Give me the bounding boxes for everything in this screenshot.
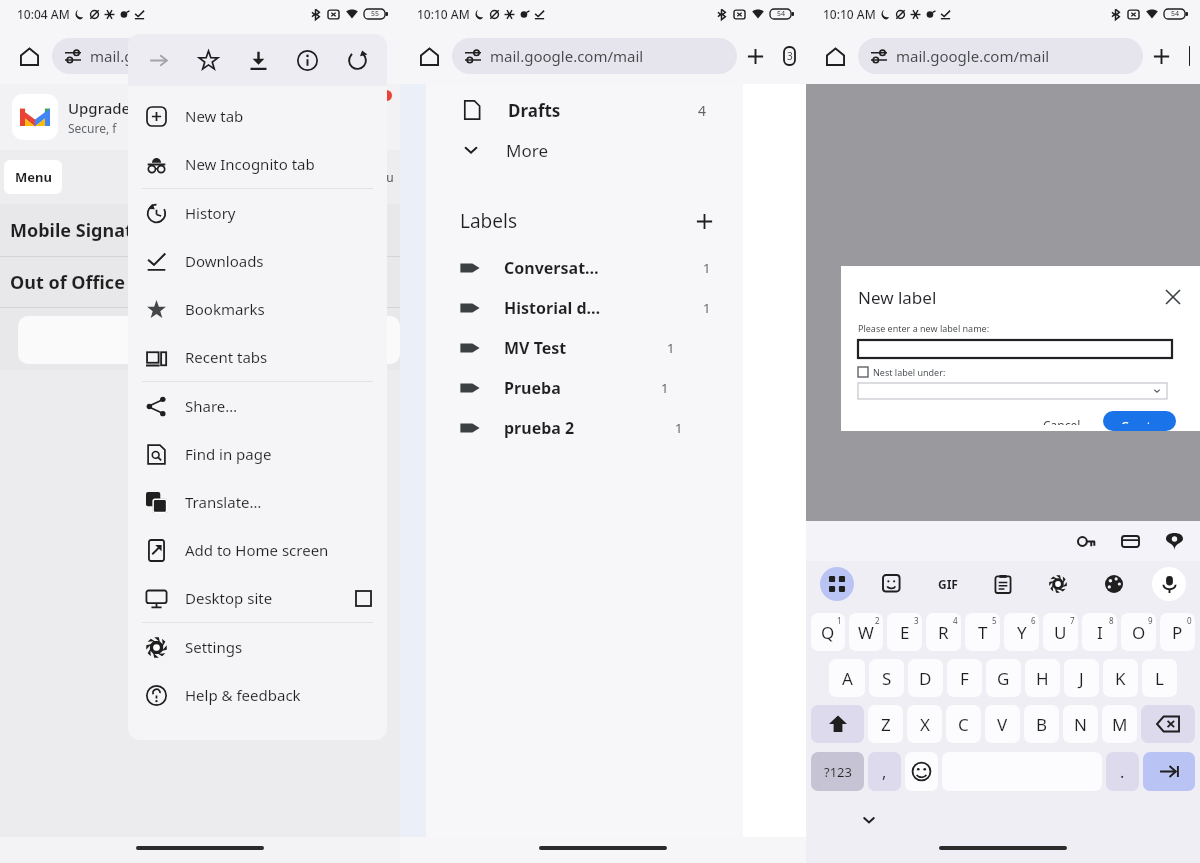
button[interactable]: C xyxy=(946,705,981,743)
button[interactable]: mail.go xyxy=(52,38,302,74)
button[interactable] xyxy=(858,367,868,377)
button[interactable]: , xyxy=(868,752,901,791)
staticText: V xyxy=(997,713,1008,736)
button[interactable]: P xyxy=(1160,613,1195,651)
button[interactable]: T xyxy=(965,613,1000,651)
button[interactable]: Bookmark xyxy=(188,40,228,80)
staticText: A xyxy=(842,667,853,690)
button[interactable]: M xyxy=(1102,705,1137,743)
button[interactable]: N xyxy=(1063,705,1098,743)
button[interactable]: F xyxy=(947,659,982,697)
button[interactable]: New tab xyxy=(1143,38,1179,74)
button[interactable]: New tab xyxy=(128,92,387,140)
button[interactable]: . xyxy=(1106,752,1139,791)
button[interactable] xyxy=(858,340,1172,358)
button[interactable]: Prueba xyxy=(400,368,743,408)
button[interactable]: Downloads xyxy=(128,237,387,285)
button[interactable]: New Incognito tab xyxy=(128,140,387,188)
button[interactable]: Tabs xyxy=(1189,38,1190,74)
button[interactable]: A xyxy=(829,659,865,697)
button[interactable]: Shift xyxy=(811,705,864,743)
button[interactable]: Help & feedback xyxy=(128,671,387,719)
button[interactable]: R xyxy=(926,613,961,651)
button[interactable]: Create new label xyxy=(687,204,721,238)
button[interactable]: L xyxy=(1142,659,1177,697)
button[interactable]: Addresses xyxy=(1158,525,1190,557)
button[interactable]: Payment methods xyxy=(1114,525,1146,557)
button[interactable]: Historial de convers… xyxy=(400,288,743,328)
button[interactable]: O xyxy=(1121,613,1156,651)
button[interactable]: Settings xyxy=(1041,567,1075,601)
button[interactable]: Download xyxy=(238,40,278,80)
button[interactable]: Toolbar xyxy=(820,567,854,601)
button[interactable]: Q xyxy=(811,613,845,651)
button[interactable]: GIF xyxy=(931,567,965,601)
button[interactable]: Bookmarks xyxy=(128,285,387,333)
button[interactable]: Desktop site xyxy=(128,574,387,622)
staticText: mail.google.com/mail xyxy=(896,46,1050,66)
staticText: Drafts xyxy=(508,99,561,122)
button[interactable]: mail.google.com/mail xyxy=(858,38,1143,74)
button[interactable]: Home xyxy=(412,39,446,73)
button[interactable]: V xyxy=(985,705,1020,743)
button[interactable]: Clipboard xyxy=(986,567,1020,601)
button[interactable]: H xyxy=(1025,659,1060,697)
button[interactable]: X xyxy=(907,705,942,743)
staticText: 2 xyxy=(875,615,880,626)
staticText: New Incognito tab xyxy=(185,154,315,174)
button[interactable]: Create xyxy=(1103,411,1176,431)
staticText: Q xyxy=(821,621,835,644)
button[interactable]: New tab xyxy=(737,38,773,74)
button[interactable]: D xyxy=(908,659,943,697)
staticText: T xyxy=(978,621,988,644)
button[interactable]: Z xyxy=(868,705,903,743)
button[interactable]: Home xyxy=(818,39,852,73)
button[interactable]: Forward xyxy=(138,40,178,80)
button[interactable]: Translate… xyxy=(128,478,387,526)
button[interactable]: mail.google.com/mail xyxy=(452,38,737,74)
button[interactable]: Backspace xyxy=(1141,705,1195,743)
button[interactable]: Cancel xyxy=(1031,411,1093,431)
button[interactable]: Recent tabs xyxy=(128,333,387,381)
button[interactable]: Tabs xyxy=(783,38,796,74)
button[interactable]: Reload xyxy=(337,40,377,80)
button[interactable]: K xyxy=(1103,659,1138,697)
button[interactable]: Settings xyxy=(128,623,387,671)
button[interactable]: Emoji xyxy=(905,752,938,791)
button[interactable]: E xyxy=(887,613,922,651)
button[interactable]: S xyxy=(869,659,904,697)
button[interactable]: Y xyxy=(1004,613,1039,651)
button[interactable] xyxy=(858,383,1167,399)
button[interactable]: W xyxy=(849,613,883,651)
button[interactable]: More xyxy=(400,130,743,170)
button[interactable]: Passwords xyxy=(1070,525,1102,557)
button[interactable]: Themes xyxy=(1097,567,1131,601)
button[interactable]: Drafts xyxy=(400,90,743,130)
button[interactable]: Close xyxy=(1158,282,1188,312)
button[interactable]: ?123 xyxy=(811,752,864,791)
button[interactable]: Enter xyxy=(1143,752,1195,791)
button[interactable]: Page info xyxy=(287,40,327,80)
button[interactable]: J xyxy=(1064,659,1099,697)
button[interactable]: Share… xyxy=(128,382,387,430)
button[interactable]: prueba 2 xyxy=(400,408,743,448)
staticText: Prueba xyxy=(504,377,561,399)
staticText: 1 xyxy=(667,339,675,357)
button[interactable]: G xyxy=(986,659,1021,697)
button[interactable]: Hide keyboard xyxy=(854,805,884,835)
button[interactable]: Find in page xyxy=(128,430,387,478)
button[interactable]: History xyxy=(128,189,387,237)
button[interactable]: Add to Home screen xyxy=(128,526,387,574)
staticText: 8 xyxy=(1109,615,1114,626)
button[interactable]: Voice input xyxy=(1152,567,1186,601)
button[interactable]: Stickers xyxy=(875,567,909,601)
button[interactable]: I xyxy=(1082,613,1117,651)
button[interactable]: MV Test xyxy=(400,328,743,368)
button[interactable]: Home xyxy=(12,39,46,73)
staticText: prueba 2 xyxy=(504,417,575,439)
button[interactable]: Conversation History xyxy=(400,248,743,288)
button[interactable]: B xyxy=(1024,705,1059,743)
button[interactable]: U xyxy=(1043,613,1078,651)
button[interactable]: Menu xyxy=(4,160,62,194)
